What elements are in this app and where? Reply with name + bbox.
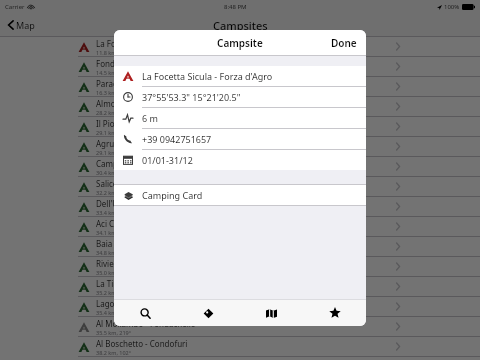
staticText: 35.2 km, 221°	[96, 289, 132, 296]
button[interactable]: Baia del Sole - Riposto	[0, 237, 480, 256]
button[interactable]: Lago Verde - Milazzo	[0, 297, 480, 316]
button[interactable]: Dell'Ulivo - Acireale	[0, 197, 480, 216]
staticText: Baia del Sole - Riposto	[96, 238, 179, 249]
staticText: 35.0 km, 203°	[96, 269, 132, 276]
staticText: Il Pioppeto - Santa Venerina	[96, 118, 201, 129]
staticText: Carrier	[5, 3, 25, 11]
staticText: 34.1 km, 226°	[96, 229, 132, 236]
staticText: 100%	[444, 3, 460, 11]
staticText: 35.5 km, 219°	[96, 329, 132, 336]
staticText: 16.3 km, 208°	[96, 89, 132, 96]
button[interactable]: Fondachello - Mascali	[0, 57, 480, 76]
staticText: 35.4 km, 180°	[96, 309, 132, 316]
button[interactable]: Salice - Messina	[0, 177, 480, 196]
button[interactable]: Riviera - Taormina	[0, 257, 480, 276]
staticText: 29.1 km, 216°	[96, 129, 132, 136]
button[interactable]: Map	[6, 17, 37, 33]
button[interactable]: Agrumeto - Giardini Naxos	[0, 137, 480, 156]
button[interactable]: Favorite	[303, 300, 366, 326]
staticText: Al Boschetto - Condofuri	[96, 338, 188, 349]
staticText: 29.1 km, 199°	[96, 149, 132, 156]
staticText: 34.8 km, 210°	[96, 249, 132, 256]
staticText: 32.2 km, 188°	[96, 189, 132, 196]
staticText: Paradiso - Fiumefreddo	[96, 78, 184, 89]
staticText: Lago Verde - Milazzo	[96, 298, 174, 309]
staticText: +39 0942751657	[142, 133, 212, 145]
staticText: Riviera - Taormina	[96, 258, 164, 269]
staticText: Aci Castello - Catania	[96, 218, 174, 229]
staticText: Campsites	[213, 18, 268, 33]
staticText: 8:48 PM	[224, 3, 247, 11]
staticText: 28.2 km, 201°	[96, 109, 132, 116]
button[interactable]: Done	[322, 32, 366, 54]
staticText: Dell'Ulivo - Acireale	[96, 198, 168, 209]
button[interactable]: Camping Card	[114, 185, 366, 205]
button[interactable]: Al Mokambo - Fondachello	[0, 317, 480, 336]
button[interactable]: Aci Castello - Catania	[0, 217, 480, 236]
staticText: Done	[331, 36, 357, 50]
staticText: Almoeta - Calatabiano	[96, 98, 179, 109]
staticText: 38.2 km, 102°	[96, 349, 132, 356]
button[interactable]: Al Boschetto - Condofuri	[0, 337, 480, 356]
button[interactable]: La Focetta Sicula - Forza d'Agro	[114, 66, 366, 86]
staticText: Fondachello - Mascali	[96, 58, 177, 69]
staticText: Camping Oasi - Letojanni	[96, 158, 191, 169]
staticText: 01/01-31/12	[142, 154, 193, 166]
button[interactable]: La Focetta Sicula - Forza d'Agro	[0, 37, 480, 56]
staticText: 30.4 km, 194°	[96, 169, 132, 176]
button[interactable]: 01/01-31/12	[114, 150, 366, 170]
staticText: 6 m	[142, 112, 158, 124]
button[interactable]: 6 m	[114, 108, 366, 128]
staticText: Salice - Messina	[96, 178, 156, 189]
staticText: 11.8 km, 196°	[96, 49, 132, 56]
staticText: Map	[16, 19, 35, 31]
staticText: Agrumeto - Giardini Naxos	[96, 138, 196, 149]
staticText: 33.4 km, 219°	[96, 209, 132, 216]
staticText: La Focetta Sicula - Forza d'Agro	[142, 70, 273, 82]
staticText: 37°55'53.3" 15°21'20.5"	[142, 91, 241, 103]
button[interactable]: 37°55'53.3" 15°21'20.5"	[114, 87, 366, 107]
button[interactable]: Almoeta - Calatabiano	[0, 97, 480, 116]
button[interactable]: Navigate	[177, 300, 240, 326]
staticText: Al Mokambo - Fondachello	[96, 318, 196, 329]
staticText: 14.5 km, 212°	[96, 69, 132, 76]
button[interactable]: Search	[114, 300, 177, 326]
button[interactable]: +39 0942751657	[114, 129, 366, 149]
button[interactable]: Camping Oasi - Letojanni	[0, 157, 480, 176]
staticText: Camping Card	[142, 189, 203, 201]
button[interactable]: Paradiso - Fiumefreddo	[0, 77, 480, 96]
button[interactable]: La Timpa - Acireale	[0, 277, 480, 296]
staticText: Campsite	[217, 36, 263, 50]
staticText: La Timpa - Acireale	[96, 278, 167, 289]
button[interactable]: Il Pioppeto - Santa Venerina	[0, 117, 480, 136]
button[interactable]: Map	[240, 300, 303, 326]
staticText: La Focetta Sicula - Forza d'Agro	[96, 38, 212, 49]
